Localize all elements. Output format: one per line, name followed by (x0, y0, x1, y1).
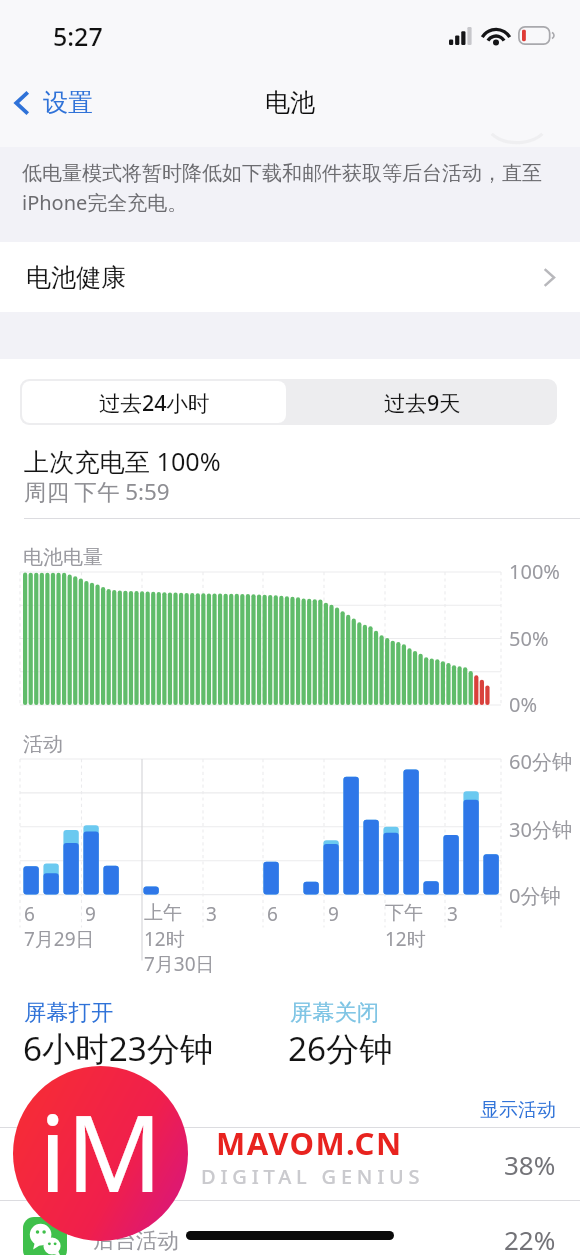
staticText: 电池健康 (26, 262, 126, 293)
staticText: 设置 (43, 87, 93, 118)
staticText: 电池 (265, 87, 315, 118)
staticText: 显示活动 (480, 1098, 556, 1122)
staticText: 周四 下午 5:59 (24, 476, 170, 507)
staticText: DIGITAL GENIUS (201, 1163, 425, 1190)
other: Wi-Fi (483, 25, 509, 45)
staticText: 6 (24, 901, 35, 927)
staticText: 低电量模式将暂时降低如下载和邮件获取等后台活动，直至 (22, 161, 542, 186)
staticText: 7月30日 (144, 951, 215, 977)
staticText: 电池电量 (23, 545, 103, 570)
staticText: 9 (85, 901, 96, 927)
staticText: 9 (328, 901, 339, 927)
staticText: 7月29日 (24, 926, 95, 952)
staticText: 3 (447, 901, 458, 927)
staticText: iM (39, 1079, 163, 1223)
staticText: iPhone完全充电。 (22, 189, 188, 216)
staticText: 下午 (385, 901, 423, 925)
staticText: 6小时23分钟 (23, 1025, 214, 1070)
staticText: 100% (509, 558, 560, 585)
staticText: 12时 (144, 926, 185, 952)
staticText: 屏幕关闭 (290, 999, 380, 1027)
staticText: 3 (206, 901, 217, 927)
staticText: 上午 (144, 901, 182, 925)
staticText: 0分钟 (509, 882, 561, 909)
staticText: 屏幕打开 (24, 999, 114, 1027)
staticText: 过去9天 (384, 388, 461, 417)
button[interactable]: 电池健康 (0, 242, 580, 312)
other: Cellular signal (449, 27, 473, 45)
staticText: 22% (504, 1222, 556, 1255)
button[interactable]: 过去24小时 (22, 381, 286, 423)
staticText: 26分钟 (288, 1025, 393, 1070)
staticText: 6 (267, 901, 278, 927)
staticText: 后台活动 (93, 1227, 179, 1254)
button[interactable]: 显示活动 (470, 1092, 566, 1128)
staticText: 5:27 (53, 19, 103, 53)
staticText: 活动 (23, 732, 63, 757)
staticText: 30分钟 (509, 816, 572, 843)
staticText: 0% (509, 691, 538, 718)
staticText: 12时 (385, 926, 426, 952)
other: Battery low (518, 26, 554, 45)
staticText: 38% (504, 1147, 556, 1182)
button[interactable]: 设置 (6, 75, 136, 130)
staticText: 过去24小时 (99, 388, 210, 417)
staticText: 上次充电至 100% (24, 444, 221, 478)
other: Open battery health (543, 268, 555, 287)
button[interactable]: 过去9天 (288, 379, 557, 425)
staticText: 50% (509, 625, 549, 652)
staticText: MAVOM.CN (216, 1122, 403, 1164)
staticText: 60分钟 (509, 748, 572, 775)
